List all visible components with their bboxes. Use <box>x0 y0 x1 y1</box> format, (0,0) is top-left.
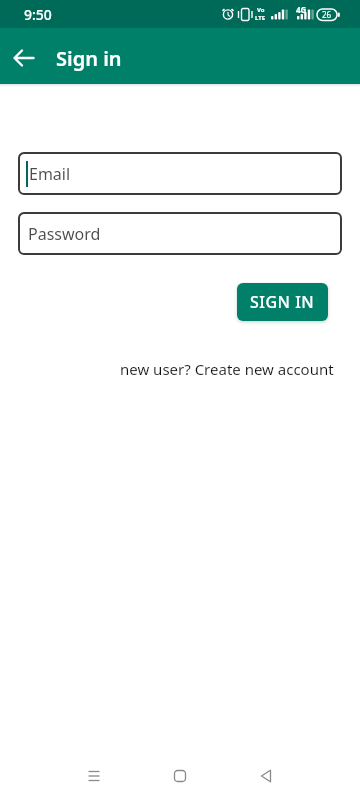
staticText: LTE <box>255 14 266 22</box>
button[interactable]: Email <box>18 152 342 195</box>
staticText: Vo <box>257 6 265 14</box>
staticText: SIGN IN <box>250 291 315 313</box>
staticText: new user? Create new account <box>120 359 334 379</box>
staticText: 9:50 <box>24 5 52 24</box>
button[interactable]: SIGN IN <box>237 283 328 321</box>
button[interactable]: Password <box>18 212 342 255</box>
button[interactable] <box>78 760 110 792</box>
button[interactable]: new user? Create new account <box>120 359 334 379</box>
staticText: Email <box>29 163 71 185</box>
button[interactable] <box>8 42 40 74</box>
button[interactable] <box>164 760 196 792</box>
button[interactable] <box>250 760 282 792</box>
staticText: Password <box>28 223 101 245</box>
staticText: 4G <box>296 4 307 15</box>
staticText: Sign in <box>56 45 122 72</box>
staticText: 26 <box>322 9 332 20</box>
